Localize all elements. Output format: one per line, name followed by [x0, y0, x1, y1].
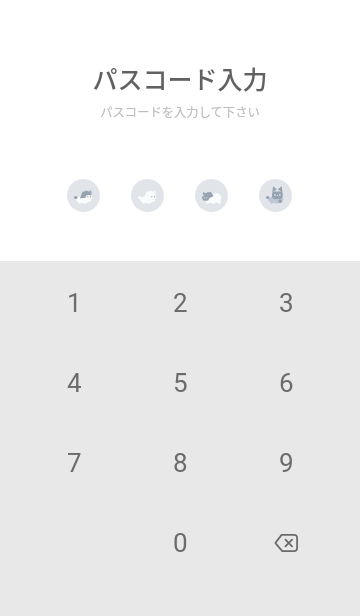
staticText: パスコード入力 [92, 60, 268, 96]
other: Passcode digit 3 [195, 179, 228, 212]
button[interactable]: 1 [31, 266, 117, 340]
staticText: 2 [173, 288, 188, 318]
button[interactable]: 8 [137, 426, 223, 500]
button[interactable]: 5 [137, 346, 223, 420]
staticText: 8 [173, 448, 188, 478]
other: Passcode digit 1 [67, 179, 100, 212]
other: Passcode digit 4 [259, 179, 292, 212]
staticText: 5 [173, 368, 188, 398]
staticText: 0 [173, 528, 188, 558]
button[interactable]: 6 [243, 346, 329, 420]
staticText: 9 [279, 448, 294, 478]
other: Passcode digit 2 [131, 179, 164, 212]
staticText: 4 [67, 368, 82, 398]
button[interactable]: 2 [137, 266, 223, 340]
button[interactable]: 0 [137, 506, 223, 580]
button[interactable]: 3 [243, 266, 329, 340]
button[interactable]: 7 [31, 426, 117, 500]
button[interactable]: 4 [31, 346, 117, 420]
staticText: パスコードを入力して下さい [100, 103, 260, 121]
button[interactable]: Backspace [243, 506, 329, 580]
staticText: 1 [67, 288, 82, 318]
button[interactable]: 9 [243, 426, 329, 500]
staticText: 6 [279, 368, 294, 398]
staticText: 7 [67, 448, 82, 478]
staticText: 3 [279, 288, 294, 318]
